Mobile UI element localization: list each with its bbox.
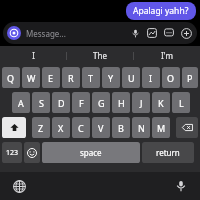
- button[interactable]: I'm: [134, 46, 200, 65]
- staticText: A: [18, 97, 24, 109]
- button[interactable]: N: [132, 117, 150, 138]
- button[interactable]: O: [162, 67, 180, 88]
- button[interactable]: V: [92, 117, 110, 138]
- button[interactable]: C: [72, 117, 90, 138]
- button[interactable]: X: [52, 117, 70, 138]
- button[interactable]: return: [142, 142, 194, 163]
- button[interactable]: F: [72, 92, 90, 113]
- staticText: G: [98, 97, 105, 109]
- staticText: K: [158, 97, 164, 109]
- button[interactable]: A: [12, 92, 30, 113]
- button[interactable]: I: [142, 67, 160, 88]
- button[interactable]: Camera: [7, 26, 21, 40]
- button[interactable]: L: [172, 92, 190, 113]
- staticText: H: [118, 97, 125, 109]
- button[interactable]: J: [132, 92, 150, 113]
- staticText: D: [58, 97, 65, 109]
- staticText: N: [138, 122, 145, 134]
- staticText: P: [187, 72, 193, 84]
- button[interactable]: H: [112, 92, 130, 113]
- staticText: Message...: [26, 28, 128, 39]
- button[interactable]: Emoji: [24, 142, 40, 163]
- button[interactable]: Backspace: [176, 117, 198, 138]
- button[interactable]: Shift: [2, 117, 26, 138]
- button[interactable]: G: [92, 92, 110, 113]
- staticText: F: [79, 97, 84, 109]
- button[interactable]: Gallery: [145, 26, 159, 40]
- staticText: B: [118, 122, 124, 134]
- button[interactable]: P: [182, 67, 198, 88]
- button[interactable]: The: [67, 46, 133, 65]
- staticText: U: [128, 72, 135, 84]
- staticText: J: [140, 97, 143, 109]
- staticText: space: [80, 147, 102, 158]
- button[interactable]: U: [122, 67, 140, 88]
- button[interactable]: space: [42, 142, 140, 163]
- button[interactable]: Z: [32, 117, 50, 138]
- staticText: Z: [38, 122, 44, 134]
- button[interactable]: Apalagi yahh?: [126, 2, 196, 20]
- button[interactable]: W: [22, 67, 40, 88]
- staticText: Apalagi yahh?: [133, 5, 189, 17]
- staticText: R: [68, 72, 74, 84]
- staticText: The: [93, 50, 107, 61]
- button[interactable]: R: [62, 67, 80, 88]
- staticText: T: [88, 72, 94, 84]
- button[interactable]: M: [152, 117, 170, 138]
- button[interactable]: Voice message: [128, 26, 142, 40]
- staticText: E: [48, 72, 54, 84]
- button[interactable]: 123: [2, 142, 22, 163]
- staticText: I: [32, 50, 35, 61]
- button[interactable]: Stickers: [162, 26, 176, 40]
- staticText: L: [179, 97, 184, 109]
- staticText: return: [156, 147, 180, 158]
- button[interactable]: I: [0, 46, 66, 65]
- button[interactable]: B: [112, 117, 130, 138]
- staticText: C: [78, 122, 84, 134]
- button[interactable]: D: [52, 92, 70, 113]
- staticText: S: [39, 97, 44, 109]
- button[interactable]: T: [82, 67, 100, 88]
- staticText: W: [27, 72, 36, 84]
- staticText: Q: [7, 72, 15, 84]
- staticText: Y: [108, 72, 114, 84]
- staticText: V: [98, 122, 104, 134]
- staticText: M: [157, 122, 166, 134]
- button[interactable]: S: [32, 92, 50, 113]
- staticText: I'm: [161, 50, 173, 61]
- staticText: I: [149, 72, 153, 84]
- staticText: O: [167, 72, 175, 84]
- button[interactable]: Change keyboard language: [10, 177, 28, 195]
- button[interactable]: Y: [102, 67, 120, 88]
- button[interactable]: E: [42, 67, 60, 88]
- button[interactable]: Q: [2, 67, 20, 88]
- staticText: 123: [6, 148, 19, 158]
- button[interactable]: K: [152, 92, 170, 113]
- staticText: X: [58, 122, 64, 134]
- button[interactable]: More options: [179, 26, 193, 40]
- button[interactable]: Voice input: [172, 177, 190, 195]
